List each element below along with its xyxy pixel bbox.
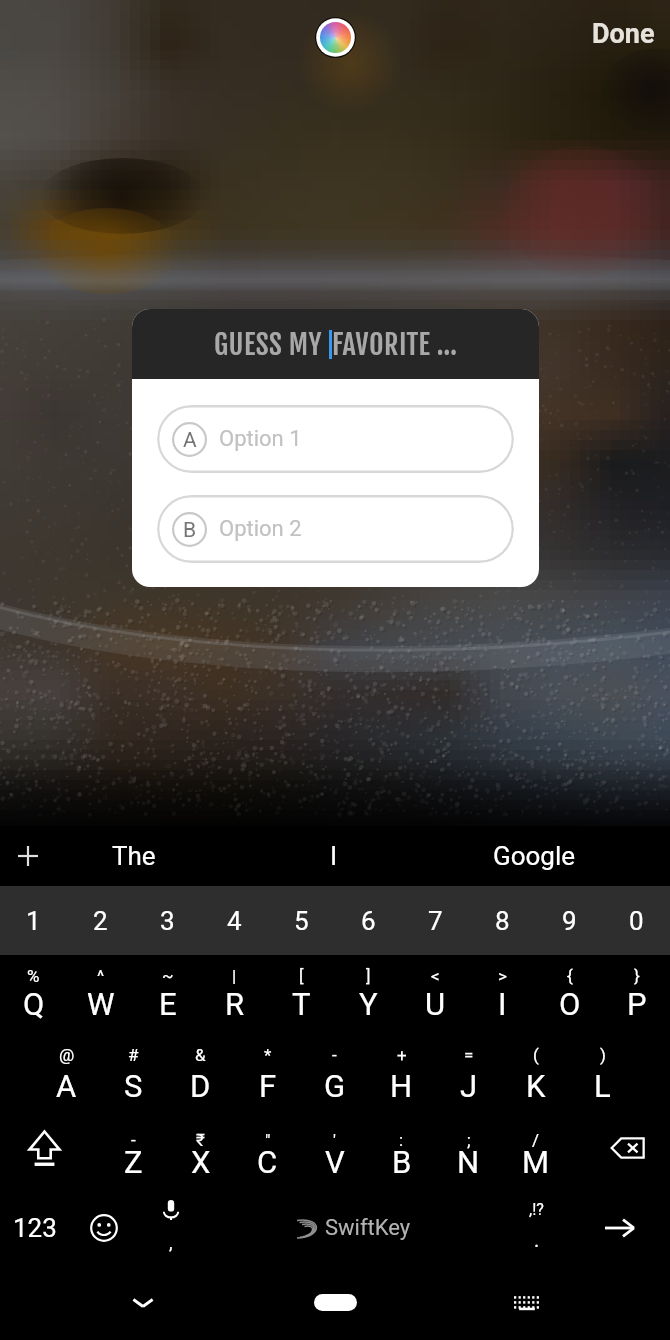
staticText: 4	[227, 906, 242, 936]
staticText: ₹	[196, 1130, 205, 1150]
button[interactable]: Emoji	[70, 1190, 137, 1265]
staticText: )	[600, 1045, 606, 1065]
button[interactable]: Add	[0, 826, 55, 886]
button[interactable]: 9	[536, 886, 603, 955]
button[interactable]: {	[536, 955, 603, 1030]
button[interactable]: Done	[586, 14, 661, 54]
button[interactable]: '	[301, 1106, 368, 1190]
staticText: ^	[97, 966, 105, 986]
button[interactable]: Colour picker	[314, 16, 357, 59]
staticText: (	[533, 1045, 539, 1065]
button[interactable]: :	[368, 1106, 435, 1190]
button[interactable]: 8	[469, 886, 536, 955]
staticText: J	[460, 1068, 478, 1104]
staticText: #	[128, 1045, 139, 1065]
button[interactable]: A	[157, 405, 514, 473]
button[interactable]: ,!?	[503, 1190, 570, 1265]
button[interactable]: %	[0, 955, 67, 1030]
button[interactable]: ;	[435, 1106, 502, 1190]
button[interactable]: Shift	[0, 1106, 100, 1190]
staticText: X	[191, 1144, 211, 1180]
button[interactable]: Backspace	[569, 1106, 670, 1190]
button[interactable]: =	[435, 1030, 502, 1106]
button[interactable]: ]	[335, 955, 402, 1030]
button[interactable]: &	[167, 1030, 234, 1106]
button[interactable]: 5	[268, 886, 335, 955]
staticText: L	[594, 1068, 611, 1104]
button[interactable]: @	[33, 1030, 100, 1106]
button[interactable]: )	[569, 1030, 636, 1106]
button[interactable]: Space	[204, 1190, 503, 1265]
staticText: 7	[428, 906, 443, 936]
button[interactable]: Google	[434, 826, 634, 886]
staticText: W	[87, 986, 115, 1022]
button[interactable]: >	[469, 955, 536, 1030]
button[interactable]: 123	[0, 1190, 70, 1265]
button[interactable]: 0	[603, 886, 670, 955]
staticText: H	[390, 1068, 413, 1104]
button[interactable]: #	[100, 1030, 167, 1106]
button[interactable]: -	[301, 1030, 368, 1106]
button[interactable]: Enter	[570, 1190, 670, 1265]
button[interactable]: }	[603, 955, 670, 1030]
button[interactable]: [	[268, 955, 335, 1030]
staticText: ;	[467, 1130, 471, 1150]
button[interactable]: Voice input	[137, 1190, 204, 1265]
staticText: -	[332, 1045, 337, 1065]
button[interactable]: ₹	[167, 1106, 234, 1190]
staticText: :	[399, 1130, 404, 1150]
staticText: *	[264, 1045, 272, 1065]
staticText: @	[59, 1045, 75, 1065]
staticText: /	[532, 1130, 540, 1150]
staticText: '	[333, 1130, 336, 1150]
staticText: V	[325, 1144, 345, 1180]
button[interactable]: Back	[0, 1265, 286, 1340]
button[interactable]: I	[234, 826, 434, 886]
staticText: -	[131, 1130, 136, 1150]
staticText: N	[457, 1144, 480, 1180]
button[interactable]: 1	[0, 886, 67, 955]
staticText: A	[56, 1068, 77, 1104]
staticText: M	[522, 1144, 550, 1180]
button[interactable]: Hide keyboard	[384, 1265, 670, 1340]
button[interactable]: 4	[201, 886, 268, 955]
staticText: ,	[169, 1232, 173, 1253]
staticText: P	[627, 986, 647, 1022]
staticText: Done	[592, 18, 655, 50]
button[interactable]: <	[402, 955, 469, 1030]
staticText: E	[159, 986, 177, 1022]
button[interactable]: Home	[286, 1265, 384, 1340]
staticText: |	[232, 966, 237, 986]
button[interactable]: -	[100, 1106, 167, 1190]
staticText: I	[330, 841, 338, 871]
button[interactable]: 7	[402, 886, 469, 955]
staticText: R	[225, 986, 245, 1022]
button[interactable]: The	[34, 826, 234, 886]
button[interactable]: B	[157, 495, 514, 563]
staticText: Option 1	[219, 426, 302, 452]
button[interactable]: 3	[134, 886, 201, 955]
button[interactable]: +	[368, 1030, 435, 1106]
button[interactable]: 6	[335, 886, 402, 955]
staticText: GUESS MY	[214, 327, 329, 362]
staticText: B	[183, 518, 197, 543]
staticText: I	[498, 986, 507, 1022]
button[interactable]: |	[201, 955, 268, 1030]
staticText: %	[27, 966, 40, 986]
staticText: ~	[162, 966, 174, 986]
staticText: A	[183, 428, 197, 453]
button[interactable]: 2	[67, 886, 134, 955]
staticText: 9	[562, 906, 577, 936]
staticText: D	[190, 1068, 211, 1104]
staticText: 3	[160, 906, 175, 936]
staticText: T	[292, 986, 311, 1022]
staticText: "	[265, 1130, 271, 1150]
button[interactable]: ^	[67, 955, 134, 1030]
staticText: U	[425, 986, 446, 1022]
staticText: =	[464, 1045, 474, 1065]
button[interactable]: "	[234, 1106, 301, 1190]
button[interactable]: *	[234, 1030, 301, 1106]
button[interactable]: /	[502, 1106, 569, 1190]
button[interactable]: ~	[134, 955, 201, 1030]
button[interactable]: (	[502, 1030, 569, 1106]
